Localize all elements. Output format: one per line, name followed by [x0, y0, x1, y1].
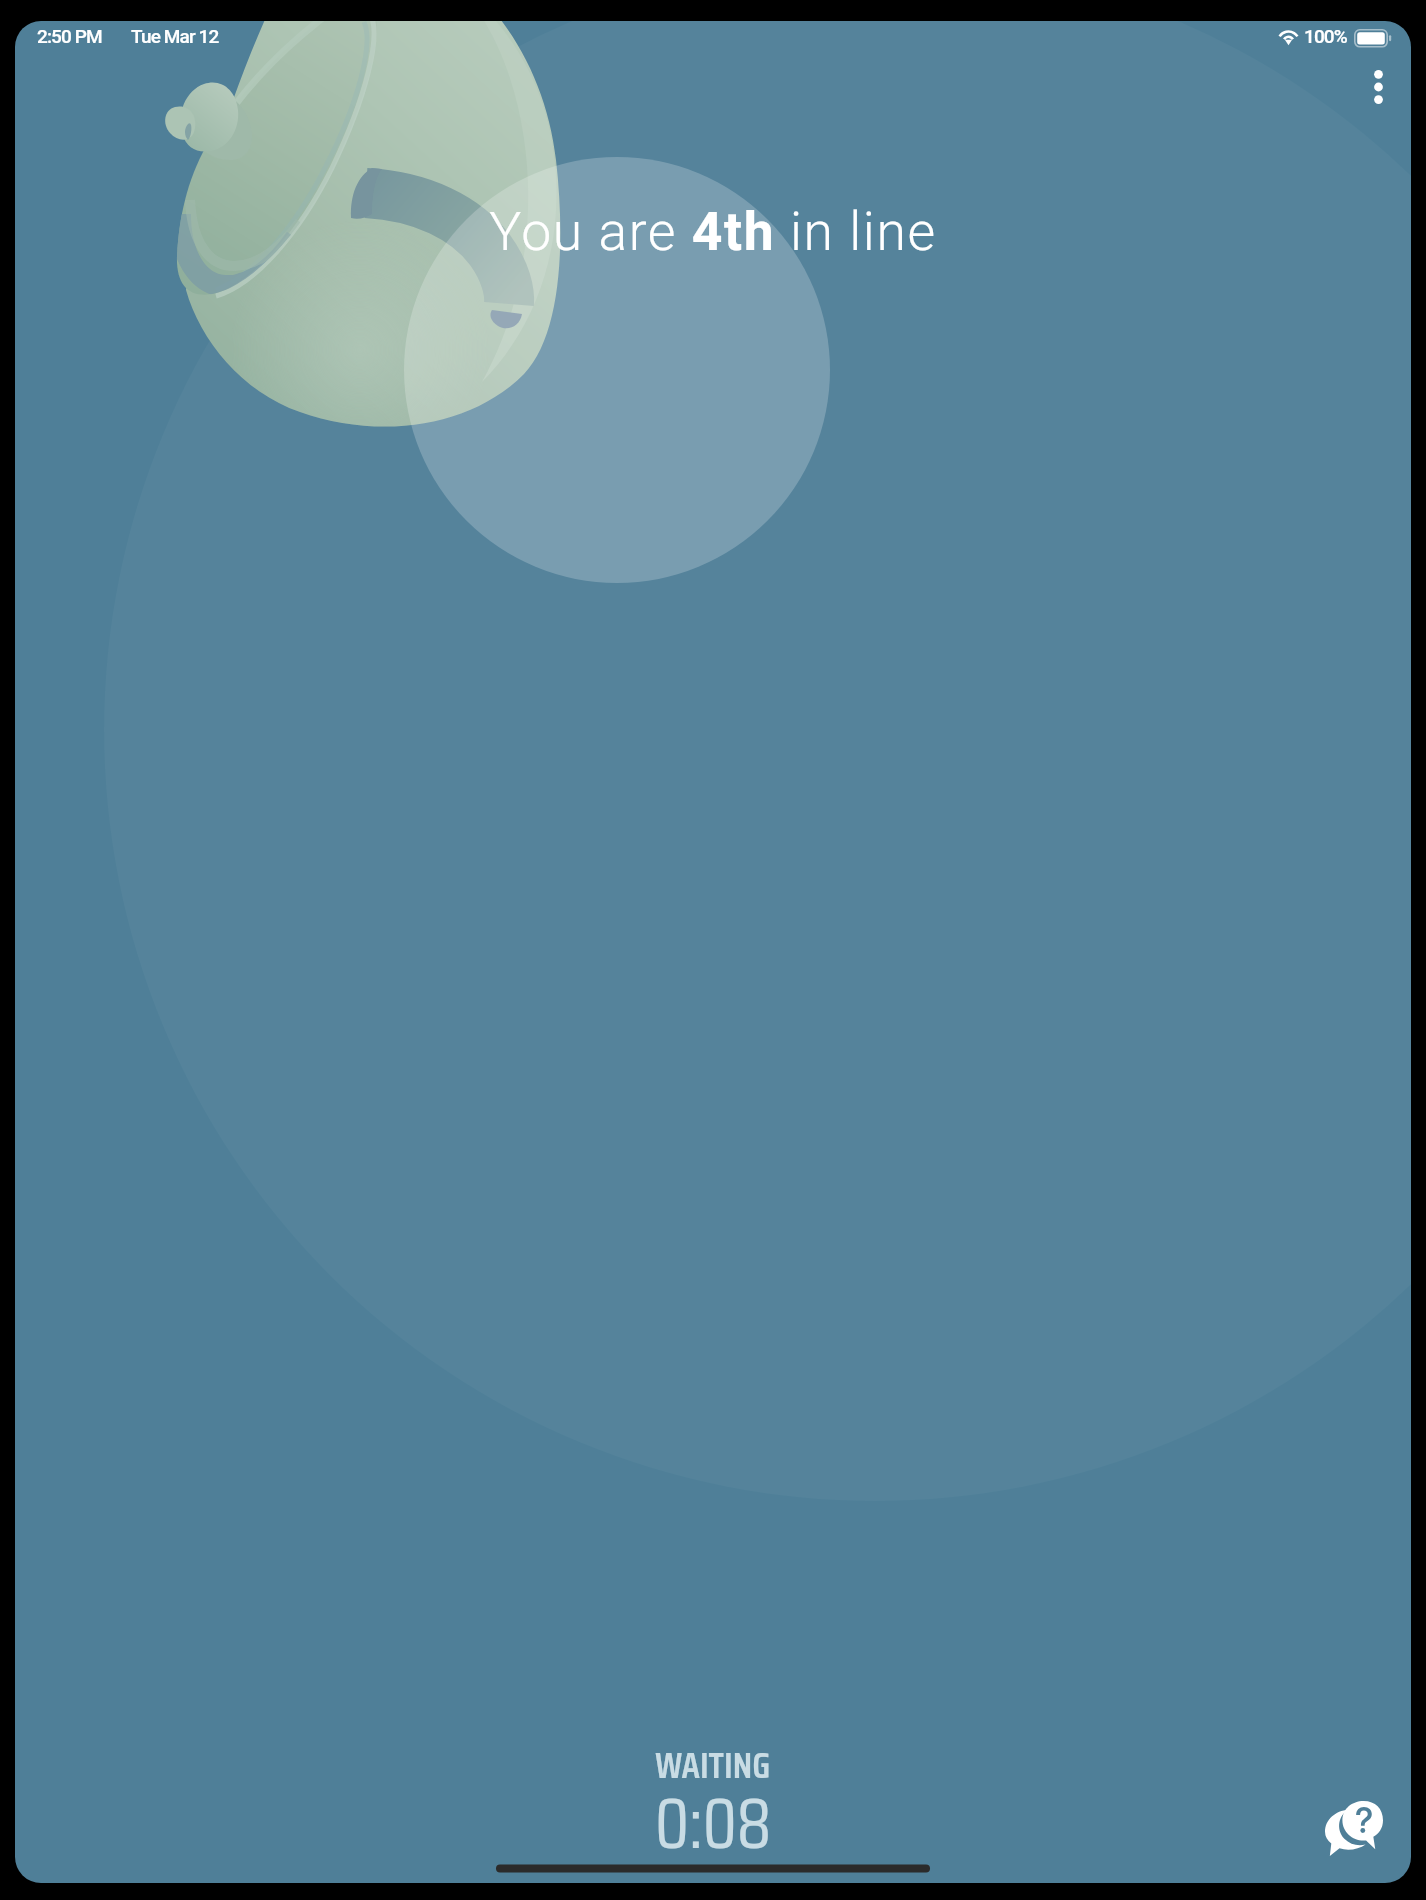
- button[interactable]: Help: [1325, 1799, 1383, 1857]
- staticText: WAITING: [655, 1736, 771, 1795]
- button[interactable]: More options: [1360, 63, 1411, 129]
- staticText: 2:50 PM: [37, 25, 102, 47]
- staticText: 0:08: [655, 1768, 772, 1879]
- staticText: Tue Mar 12: [131, 25, 219, 47]
- staticText: You are 4th in line: [15, 200, 1411, 1883]
- staticText: 100%: [1304, 25, 1347, 47]
